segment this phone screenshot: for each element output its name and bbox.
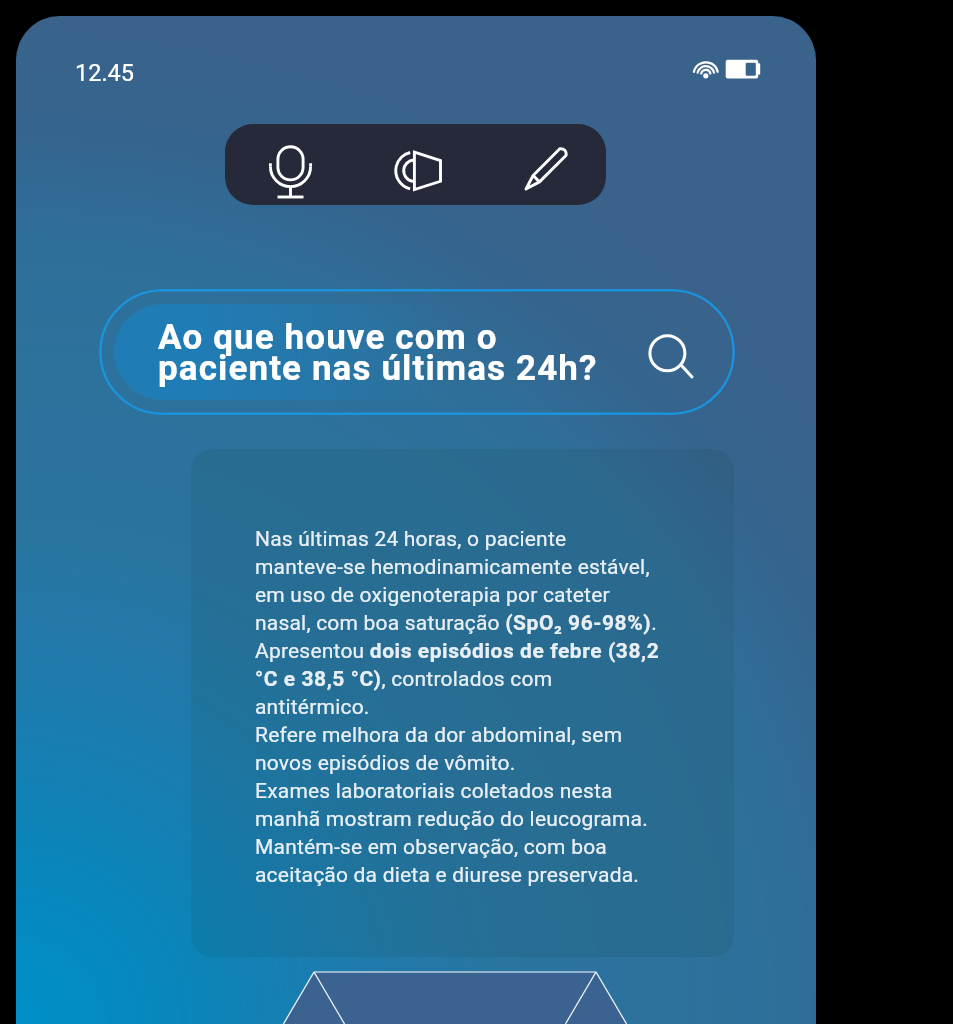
staticText: 12.45	[75, 59, 135, 87]
button[interactable]: Edit	[504, 128, 589, 202]
button[interactable]: Read aloud	[376, 128, 461, 202]
staticText: Nas últimas 24 horas, o paciente manteve…	[255, 527, 725, 887]
button[interactable]: Ao que houve com o paciente nas últimas …	[99, 289, 735, 415]
other: Search	[640, 326, 696, 382]
button[interactable]: Voice input	[248, 128, 333, 202]
staticText: Ao que houve com o paciente nas últimas …	[158, 317, 598, 388]
